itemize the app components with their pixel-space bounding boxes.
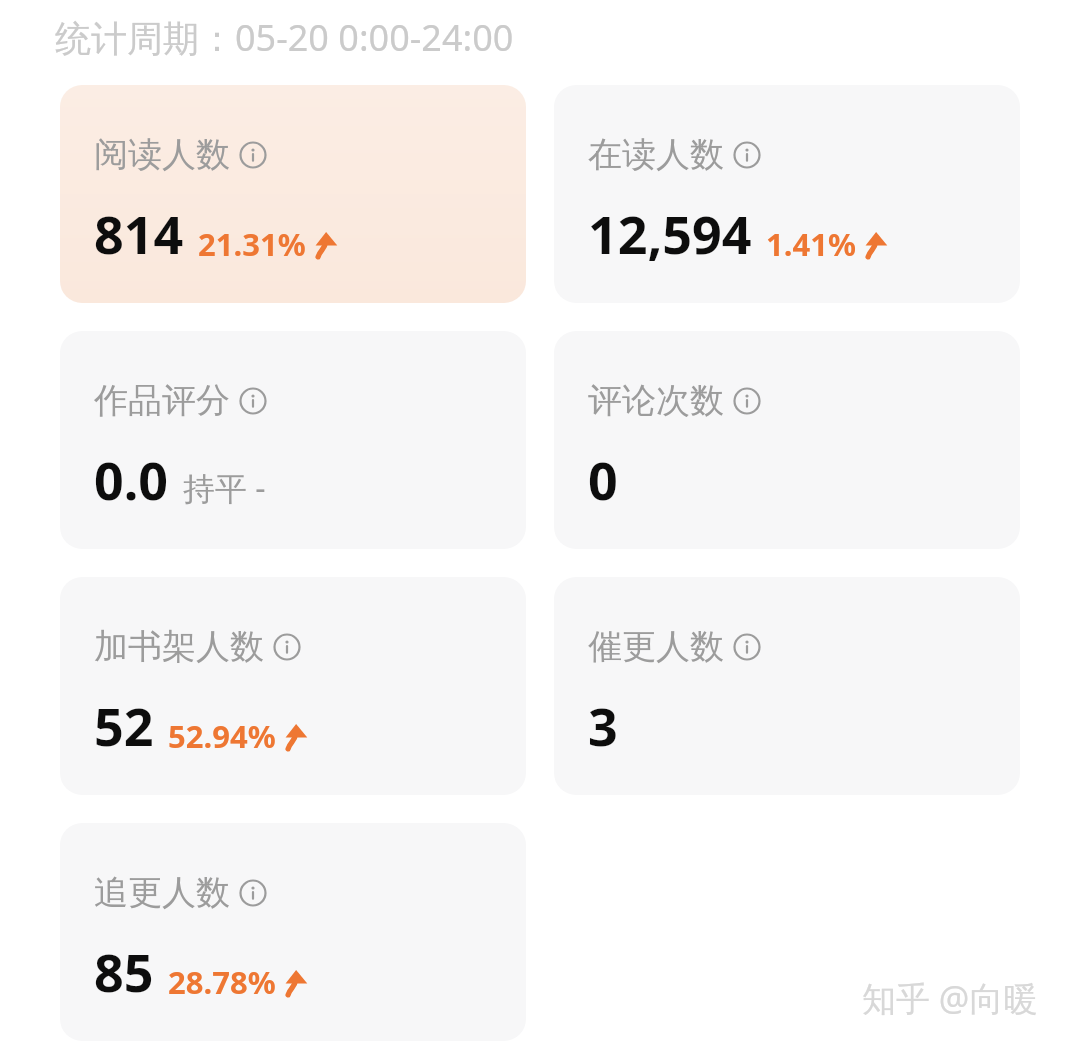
staticText: 1.41%	[766, 223, 856, 265]
button[interactable]: 说明	[238, 140, 268, 170]
button[interactable]: 说明	[238, 878, 268, 908]
staticText: 3	[588, 690, 618, 761]
staticText: 在读人数	[588, 133, 724, 176]
button[interactable]: 阅读人数	[60, 85, 526, 303]
button[interactable]: 说明	[732, 386, 762, 416]
staticText: 0	[588, 444, 618, 515]
staticText: 知乎 @向暖	[862, 975, 1038, 1021]
staticText: 阅读人数	[94, 133, 230, 176]
staticText: 814	[94, 198, 184, 269]
staticText: 评论次数	[588, 379, 724, 422]
staticText: 0.0	[94, 444, 169, 515]
button[interactable]: 加书架人数	[60, 577, 526, 795]
button[interactable]: 说明	[272, 632, 302, 662]
staticText: 85	[94, 936, 154, 1007]
staticText: 催更人数	[588, 625, 724, 668]
staticText: 作品评分	[94, 379, 230, 422]
staticText: 52.94%	[168, 715, 276, 757]
staticText: 加书架人数	[94, 625, 264, 668]
button[interactable]: 追更人数	[60, 823, 526, 1041]
button[interactable]: 评论次数	[554, 331, 1020, 549]
button[interactable]: 说明	[732, 140, 762, 170]
staticText: 52	[94, 690, 154, 761]
button[interactable]: 在读人数	[554, 85, 1020, 303]
staticText: 21.31%	[198, 223, 306, 265]
button[interactable]: 作品评分	[60, 331, 526, 549]
staticText: 28.78%	[168, 961, 276, 1003]
staticText: 统计周期：05-20 0:00-24:00	[55, 13, 514, 62]
staticText: 持平 -	[183, 466, 266, 510]
button[interactable]: 说明	[732, 632, 762, 662]
button[interactable]: 说明	[238, 386, 268, 416]
staticText: 追更人数	[94, 871, 230, 914]
staticText: 12,594	[588, 198, 752, 269]
button[interactable]: 催更人数	[554, 577, 1020, 795]
